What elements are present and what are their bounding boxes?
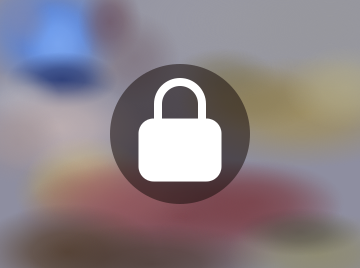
button[interactable]: Unlock <box>110 64 250 204</box>
